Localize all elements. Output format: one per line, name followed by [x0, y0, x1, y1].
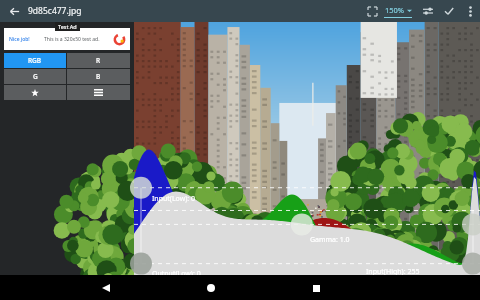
button[interactable]: G [4, 69, 66, 84]
button[interactable]: Nice job! [4, 28, 130, 50]
staticText: 9d85c477.jpg [28, 5, 82, 17]
button[interactable]: Adjust [418, 1, 438, 21]
staticText: R [96, 56, 101, 65]
button[interactable]: Home [200, 277, 222, 299]
staticText: G [33, 72, 38, 81]
staticText: Input(High): 255 [366, 267, 420, 275]
button[interactable]: Presets [4, 85, 66, 100]
staticText: Test Ad [58, 23, 77, 30]
button[interactable]: Apply [438, 0, 460, 22]
staticText: RGB [28, 56, 42, 65]
staticText: Input(Low): 0 [152, 194, 196, 204]
button[interactable]: B [67, 69, 130, 84]
staticText: Nice job! [9, 36, 30, 43]
button[interactable]: Back [95, 277, 117, 299]
staticText: B [96, 72, 101, 81]
button[interactable]: Fit to screen [362, 1, 382, 21]
staticText: Output(Low): 0 [152, 269, 201, 275]
staticText: This is a 320x50 test ad. [44, 36, 100, 43]
button[interactable]: More options [460, 0, 480, 22]
button[interactable]: Menu [67, 85, 130, 100]
button[interactable]: Back [0, 0, 28, 22]
staticText: Gamma: 1.0 [310, 235, 350, 245]
button[interactable]: Recents [305, 277, 327, 299]
button[interactable]: 150% [382, 5, 414, 18]
staticText: 150% [385, 5, 405, 15]
button[interactable]: RGB [4, 53, 66, 68]
button[interactable]: R [67, 53, 130, 68]
